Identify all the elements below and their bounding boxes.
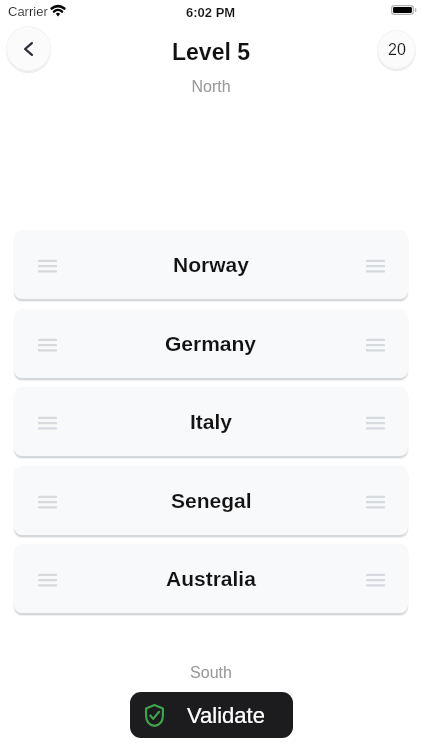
staticText: Validate bbox=[187, 703, 265, 728]
button[interactable]: Norway bbox=[14, 230, 408, 299]
staticText: Carrier bbox=[8, 4, 48, 19]
staticText: Norway bbox=[173, 253, 249, 276]
button[interactable]: Australia bbox=[14, 544, 408, 613]
staticText: North bbox=[0, 78, 422, 96]
button[interactable]: Score 20 bbox=[377, 30, 416, 69]
staticText: Level 5 bbox=[0, 39, 422, 65]
staticText: 20 bbox=[388, 41, 406, 59]
button[interactable]: Italy bbox=[14, 387, 408, 456]
staticText: Senegal bbox=[171, 489, 252, 512]
button[interactable]: Germany bbox=[14, 309, 408, 378]
staticText: Australia bbox=[166, 567, 256, 590]
staticText: South bbox=[0, 664, 422, 682]
button[interactable]: Back bbox=[6, 26, 51, 71]
button[interactable]: Senegal bbox=[14, 466, 408, 535]
staticText: 6:02 PM bbox=[186, 5, 236, 20]
button[interactable]: Validate bbox=[130, 692, 293, 738]
staticText: Germany bbox=[165, 332, 257, 355]
staticText: Italy bbox=[190, 410, 233, 433]
